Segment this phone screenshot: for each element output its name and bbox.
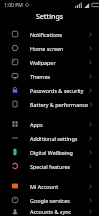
button[interactable]: Wallpaper: [0, 55, 99, 69]
button[interactable]: Apps: [0, 117, 99, 131]
staticText: Settings: [36, 12, 64, 22]
staticText: 1:00 PM: [4, 2, 23, 9]
staticText: Themes: [30, 73, 51, 80]
button[interactable]: Passwords & security: [0, 83, 99, 97]
staticText: Additional settings: [30, 135, 78, 142]
button[interactable]: Accounts & sync: [0, 207, 99, 216]
button[interactable]: Additional settings: [0, 131, 99, 145]
staticText: Notifications: [30, 31, 63, 38]
button[interactable]: Special features: [0, 159, 99, 173]
staticText: Special features: [30, 163, 71, 170]
staticText: Google services: [30, 197, 70, 204]
staticText: Mi Account: [30, 183, 59, 190]
button[interactable]: Notifications: [0, 27, 99, 41]
button[interactable]: Home screen: [0, 41, 99, 55]
button[interactable]: Google services: [0, 193, 99, 207]
button[interactable]: Digital Wellbeing: [0, 145, 99, 159]
staticText: Home screen: [30, 45, 64, 52]
staticText: Passwords & security: [30, 87, 84, 94]
staticText: Battery & performance: [30, 101, 89, 108]
staticText: Apps: [30, 121, 43, 128]
button[interactable]: Themes: [0, 69, 99, 83]
staticText: Digital Wellbeing: [30, 149, 73, 156]
staticText: Wallpaper: [30, 59, 56, 66]
staticText: Accounts & sync: [30, 208, 72, 215]
button[interactable]: Battery & performance: [0, 97, 99, 111]
button[interactable]: Mi Account: [0, 179, 99, 193]
